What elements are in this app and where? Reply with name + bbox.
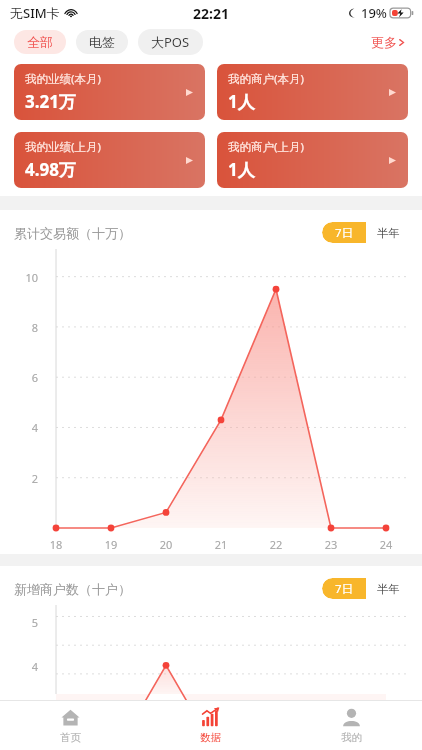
- button[interactable]: 更多: [369, 30, 408, 54]
- button[interactable]: 大POS: [138, 29, 203, 55]
- staticText: 电签: [89, 34, 115, 50]
- staticText: 7日: [335, 225, 354, 241]
- staticText: 7日: [335, 581, 354, 597]
- staticText: 无SIM卡: [10, 4, 60, 22]
- staticText: 5: [16, 615, 38, 630]
- staticText: 新增商户数（十户）: [14, 581, 131, 597]
- staticText: 半年: [377, 226, 400, 240]
- button[interactable]: 半年: [366, 578, 410, 599]
- staticText: 我的业绩(上月): [25, 139, 101, 155]
- staticText: 半年: [377, 582, 400, 596]
- button[interactable]: 电签: [76, 30, 128, 54]
- staticText: 21: [210, 537, 232, 552]
- staticText: 数据: [200, 731, 221, 744]
- staticText: 我的: [341, 731, 362, 744]
- staticText: 我的商户(上月): [228, 139, 304, 155]
- staticText: 19%: [361, 4, 387, 22]
- button[interactable]: 我的商户(本月): [217, 64, 408, 120]
- button[interactable]: 全部: [14, 30, 66, 54]
- button[interactable]: 首页: [0, 701, 140, 750]
- staticText: 累计交易额（十万）: [14, 225, 131, 241]
- staticText: 18: [45, 537, 67, 552]
- staticText: 6: [16, 370, 38, 385]
- button[interactable]: 我的业绩(上月): [14, 132, 205, 188]
- staticText: 2: [16, 471, 38, 486]
- staticText: 我的业绩(本月): [25, 71, 101, 87]
- staticText: 4: [16, 420, 38, 435]
- staticText: 20: [155, 537, 177, 552]
- staticText: 我的商户(本月): [228, 71, 304, 87]
- button[interactable]: 数据: [140, 701, 281, 750]
- staticText: 3.21万: [25, 90, 76, 113]
- staticText: 大POS: [151, 33, 190, 51]
- staticText: 4.98万: [25, 158, 76, 181]
- staticText: 24: [375, 537, 397, 552]
- staticText: 23: [320, 537, 342, 552]
- button[interactable]: 7日: [322, 222, 366, 243]
- staticText: 4: [16, 659, 38, 674]
- staticText: 8: [16, 320, 38, 335]
- staticText: 1人: [228, 158, 255, 181]
- staticText: 10: [16, 270, 38, 285]
- staticText: 全部: [27, 34, 53, 50]
- button[interactable]: 7日: [322, 578, 366, 599]
- staticText: 22: [265, 537, 287, 552]
- staticText: 1人: [228, 90, 255, 113]
- button[interactable]: 我的: [281, 701, 422, 750]
- button[interactable]: 我的商户(上月): [217, 132, 408, 188]
- button[interactable]: 我的业绩(本月): [14, 64, 205, 120]
- button[interactable]: 半年: [366, 222, 410, 243]
- staticText: 首页: [60, 731, 81, 744]
- staticText: 22:21: [193, 4, 229, 23]
- staticText: 更多: [371, 34, 397, 50]
- staticText: 19: [100, 537, 122, 552]
